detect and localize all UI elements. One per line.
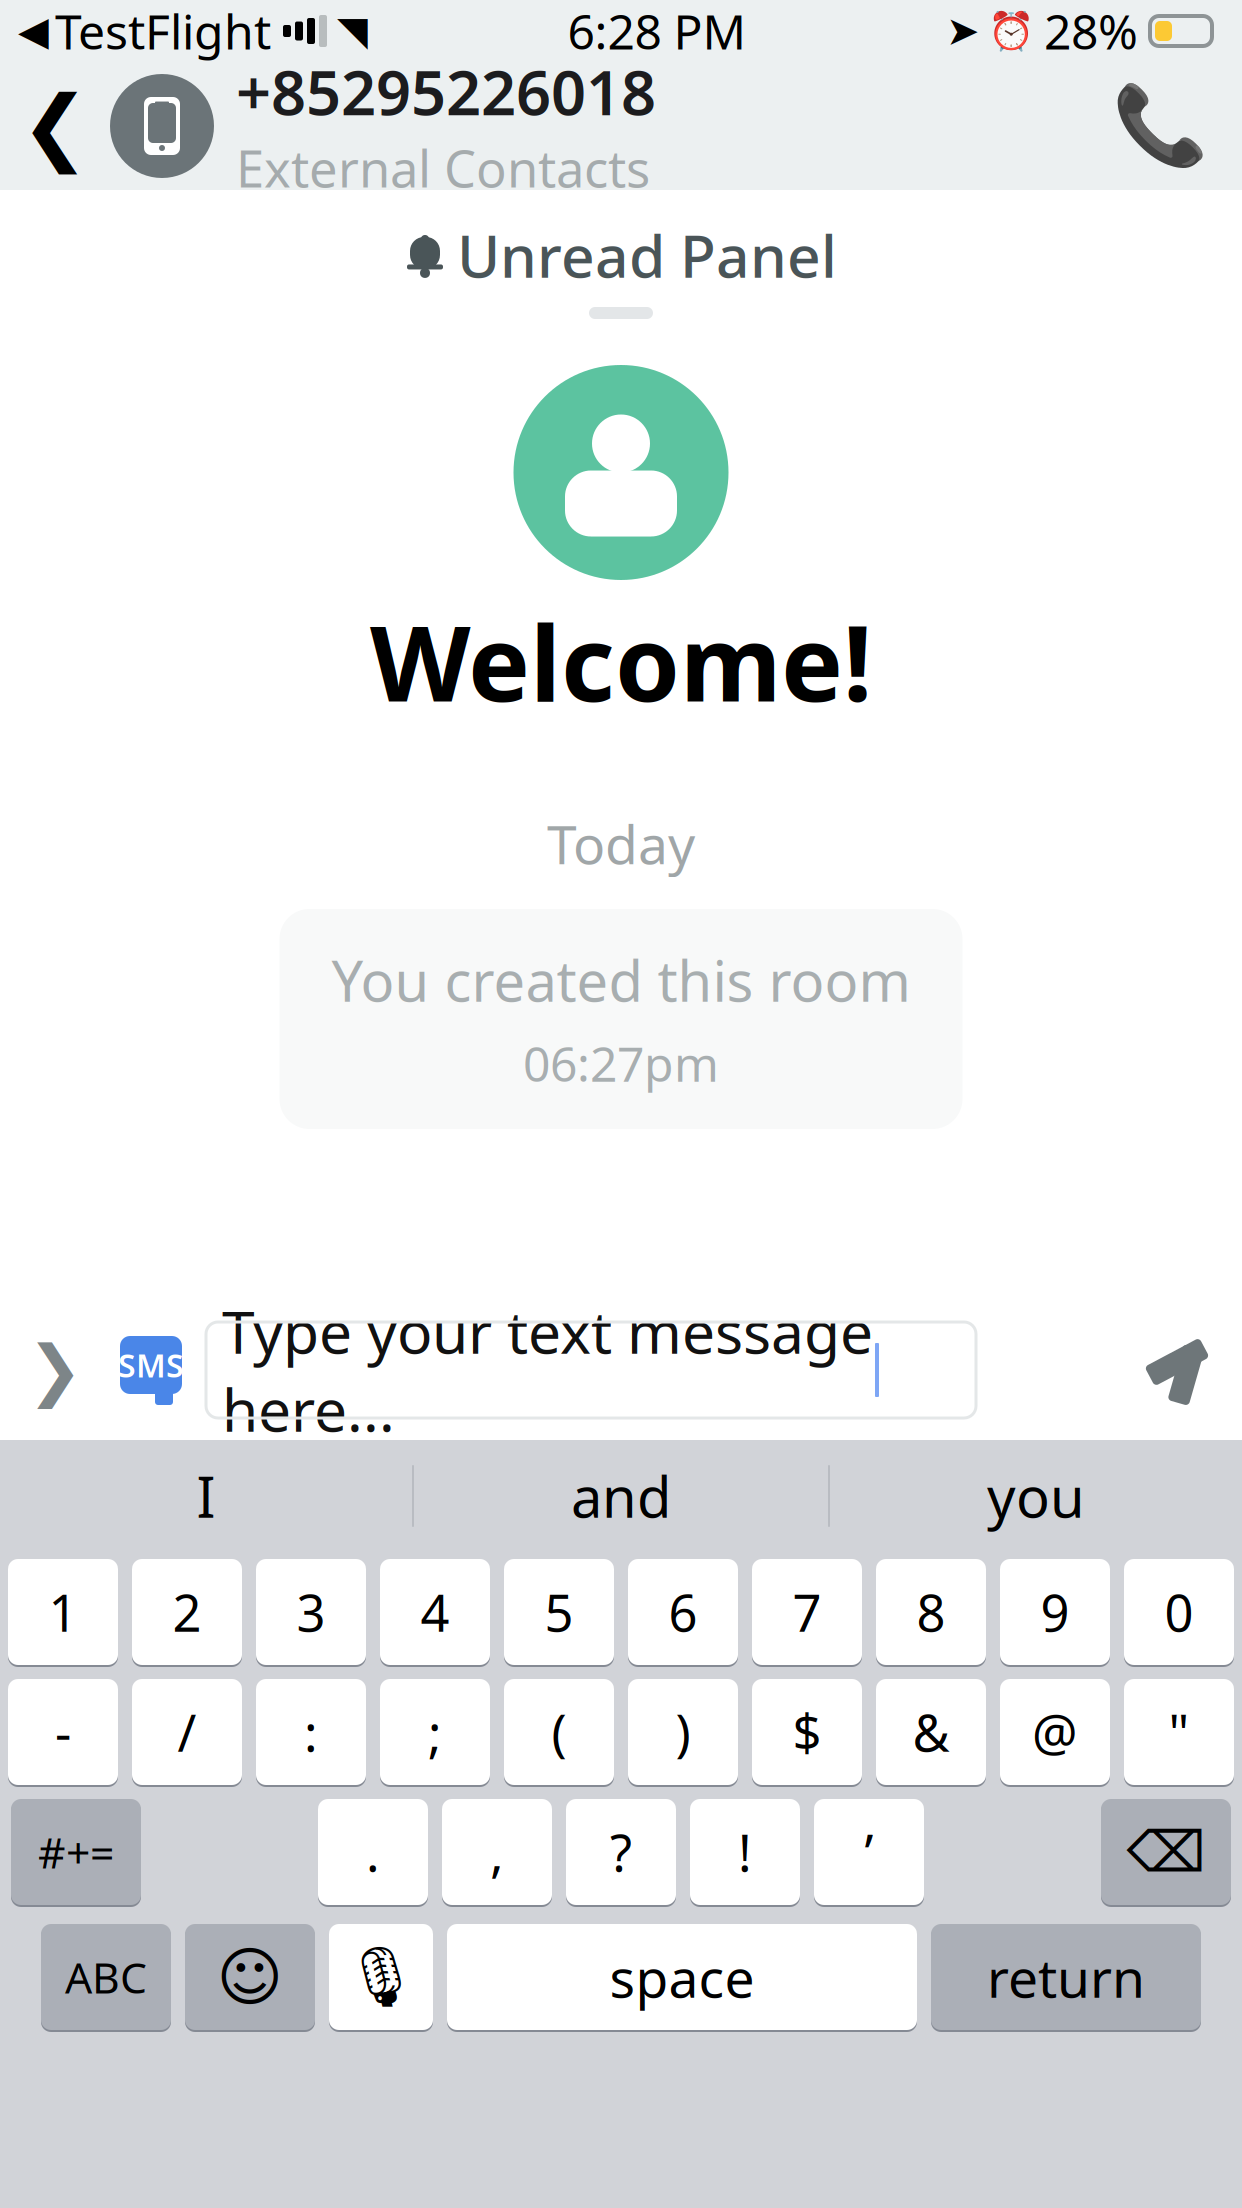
- staticText: Welcome!: [370, 592, 872, 730]
- staticText: 4: [420, 1578, 449, 1646]
- button[interactable]: 3: [256, 1557, 366, 1667]
- staticText: space: [609, 1942, 754, 2012]
- staticText: 6:28 PM: [567, 0, 746, 63]
- button[interactable]: @: [1000, 1677, 1110, 1787]
- staticText: ?: [610, 1818, 632, 1886]
- button[interactable]: (: [504, 1677, 614, 1787]
- button[interactable]: .: [318, 1797, 428, 1907]
- staticText: you: [987, 1459, 1085, 1533]
- button[interactable]: 7: [752, 1557, 862, 1667]
- staticText: &: [912, 1698, 949, 1766]
- staticText: Unread Panel: [457, 216, 837, 294]
- staticText: 📞: [1112, 82, 1208, 170]
- staticText: -: [55, 1698, 71, 1766]
- button[interactable]: 0: [1124, 1557, 1234, 1667]
- button[interactable]: return: [931, 1922, 1201, 2032]
- staticText: +85295226018: [236, 51, 656, 132]
- button[interactable]: +85295226018: [110, 62, 656, 190]
- button[interactable]: Call: [1100, 62, 1220, 190]
- staticText: ,: [490, 1818, 504, 1886]
- staticText: ’: [864, 1818, 873, 1886]
- staticText: ➤: [946, 8, 980, 54]
- staticText: 🎙: [344, 1943, 418, 2010]
- staticText: ❯: [27, 1332, 83, 1408]
- staticText: ": [1168, 1698, 1189, 1766]
- staticText: 0: [1164, 1578, 1193, 1646]
- staticText: External Contacts: [236, 134, 650, 201]
- staticText: ❮: [20, 79, 89, 173]
- button[interactable]: 2: [132, 1557, 242, 1667]
- staticText: :: [304, 1698, 318, 1766]
- button[interactable]: #+=: [11, 1797, 141, 1907]
- button[interactable]: ": [1124, 1677, 1234, 1787]
- staticText: !: [738, 1818, 752, 1886]
- button[interactable]: ): [628, 1677, 738, 1787]
- button[interactable]: I: [0, 1446, 412, 1546]
- staticText: ): [675, 1698, 690, 1766]
- button[interactable]: you: [830, 1446, 1242, 1546]
- staticText: ⌫: [1126, 1820, 1205, 1884]
- staticText: .: [366, 1818, 380, 1886]
- button[interactable]: 5: [504, 1557, 614, 1667]
- staticText: and: [571, 1459, 671, 1533]
- staticText: 7: [792, 1578, 821, 1646]
- staticText: 1: [48, 1578, 77, 1646]
- staticText: 6: [668, 1578, 697, 1646]
- staticText: $: [792, 1698, 821, 1766]
- staticText: Today: [547, 808, 695, 879]
- staticText: ;: [428, 1698, 442, 1766]
- button[interactable]: Message type SMS: [110, 1329, 192, 1411]
- staticText: 9: [1040, 1578, 1069, 1646]
- staticText: 2: [172, 1578, 201, 1646]
- button[interactable]: and: [414, 1446, 828, 1546]
- staticText: ⏰: [988, 10, 1034, 52]
- staticText: You created this room: [331, 943, 910, 1017]
- button[interactable]: &: [876, 1677, 986, 1787]
- button[interactable]: More options: [0, 1300, 110, 1440]
- staticText: 8: [916, 1578, 945, 1646]
- staticText: ☺: [216, 1941, 283, 2013]
- button[interactable]: Dictation: [329, 1922, 433, 2032]
- staticText: Type your text message here...: [222, 1292, 873, 1448]
- button[interactable]: 6: [628, 1557, 738, 1667]
- staticText: @: [1032, 1698, 1078, 1766]
- button[interactable]: /: [132, 1677, 242, 1787]
- staticText: 3: [296, 1578, 325, 1646]
- button[interactable]: 8: [876, 1557, 986, 1667]
- button[interactable]: :: [256, 1677, 366, 1787]
- button[interactable]: Type your text message here...: [206, 1322, 976, 1418]
- button[interactable]: Unread Panel: [0, 190, 1242, 345]
- staticText: 5: [544, 1578, 573, 1646]
- staticText: /: [177, 1698, 196, 1766]
- button[interactable]: ?: [566, 1797, 676, 1907]
- staticText: return: [987, 1942, 1145, 2012]
- staticText: SMS: [118, 1344, 184, 1386]
- staticText: ◥: [337, 8, 368, 54]
- staticText: 28%: [1044, 0, 1138, 63]
- button[interactable]: ;: [380, 1677, 490, 1787]
- staticText: 06:27pm: [523, 1031, 719, 1095]
- button[interactable]: ’: [814, 1797, 924, 1907]
- button[interactable]: Back: [0, 62, 110, 190]
- button[interactable]: Send: [1112, 1300, 1242, 1440]
- button[interactable]: -: [8, 1677, 118, 1787]
- button[interactable]: 9: [1000, 1557, 1110, 1667]
- staticText: I: [196, 1459, 215, 1533]
- button[interactable]: Emoji: [185, 1922, 315, 2032]
- staticText: (: [551, 1698, 566, 1766]
- button[interactable]: ABC: [41, 1922, 171, 2032]
- staticText: #+=: [38, 1824, 114, 1880]
- button[interactable]: ,: [442, 1797, 552, 1907]
- button[interactable]: 1: [8, 1557, 118, 1667]
- button[interactable]: 4: [380, 1557, 490, 1667]
- button[interactable]: space: [447, 1922, 917, 2032]
- staticText: TestFlight: [55, 0, 271, 63]
- button[interactable]: !: [690, 1797, 800, 1907]
- button[interactable]: Delete: [1101, 1797, 1231, 1907]
- staticText: ◀: [18, 8, 49, 54]
- button[interactable]: $: [752, 1677, 862, 1787]
- staticText: ABC: [65, 1949, 147, 2005]
